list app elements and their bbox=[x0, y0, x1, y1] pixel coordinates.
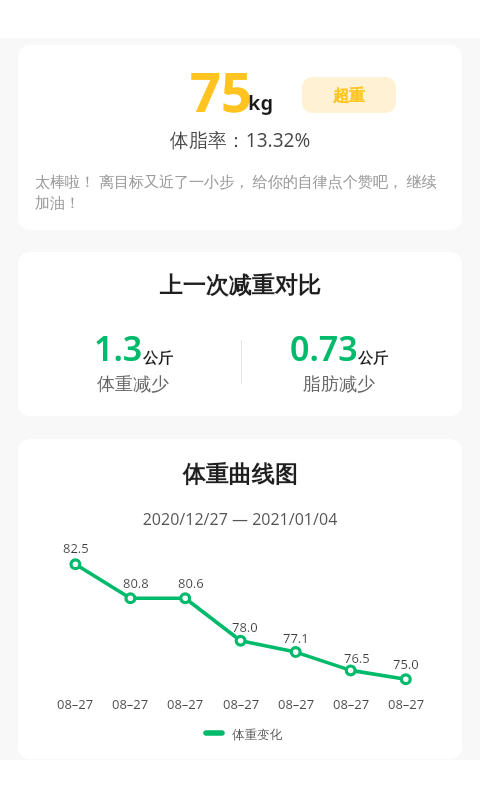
staticText: 太棒啦！ 离目标又近了一小步， 给你的自律点个赞吧， 继续 加油！ bbox=[35, 171, 447, 212]
staticText: 公斤 bbox=[358, 349, 388, 368]
staticText: 80.8 bbox=[123, 574, 149, 592]
button[interactable]: 超重 bbox=[302, 77, 396, 113]
staticText: 体重曲线图 bbox=[18, 460, 462, 489]
staticText: 82.5 bbox=[63, 539, 89, 557]
staticText: 08–27 bbox=[223, 695, 260, 713]
button[interactable]: 上一次减重对比 bbox=[18, 252, 462, 416]
staticText: 08–27 bbox=[278, 695, 315, 713]
staticText: kg bbox=[248, 89, 274, 116]
button[interactable]: 75 bbox=[18, 45, 462, 230]
staticText: 08–27 bbox=[333, 695, 370, 713]
staticText: 77.1 bbox=[283, 629, 309, 647]
staticText: 75 bbox=[190, 54, 252, 128]
staticText: 80.6 bbox=[178, 574, 204, 592]
staticText: 75.0 bbox=[393, 655, 419, 673]
staticText: 1.3 bbox=[94, 325, 143, 371]
staticText: 体脂率：13.32% bbox=[18, 127, 462, 153]
button[interactable]: 体重曲线图 bbox=[18, 439, 462, 759]
button[interactable]: 1.3 bbox=[53, 325, 213, 396]
staticText: 08–27 bbox=[112, 695, 149, 713]
staticText: 超重 bbox=[333, 86, 365, 106]
staticText: 体重变化 bbox=[232, 727, 282, 743]
staticText: 76.5 bbox=[344, 649, 370, 667]
staticText: 08–27 bbox=[167, 695, 204, 713]
staticText: 0.73 bbox=[290, 325, 358, 371]
staticText: 脂肪减少 bbox=[303, 373, 375, 396]
staticText: 体重减少 bbox=[97, 373, 169, 396]
button[interactable]: 体重变化 bbox=[200, 721, 282, 745]
staticText: 上一次减重对比 bbox=[18, 271, 462, 300]
staticText: 08–27 bbox=[388, 695, 425, 713]
staticText: 2020/12/27 — 2021/01/04 bbox=[18, 508, 462, 530]
button[interactable]: 0.73 bbox=[259, 325, 419, 396]
staticText: 08–27 bbox=[57, 695, 94, 713]
staticText: 78.0 bbox=[232, 618, 258, 636]
staticText: 公斤 bbox=[143, 349, 173, 368]
